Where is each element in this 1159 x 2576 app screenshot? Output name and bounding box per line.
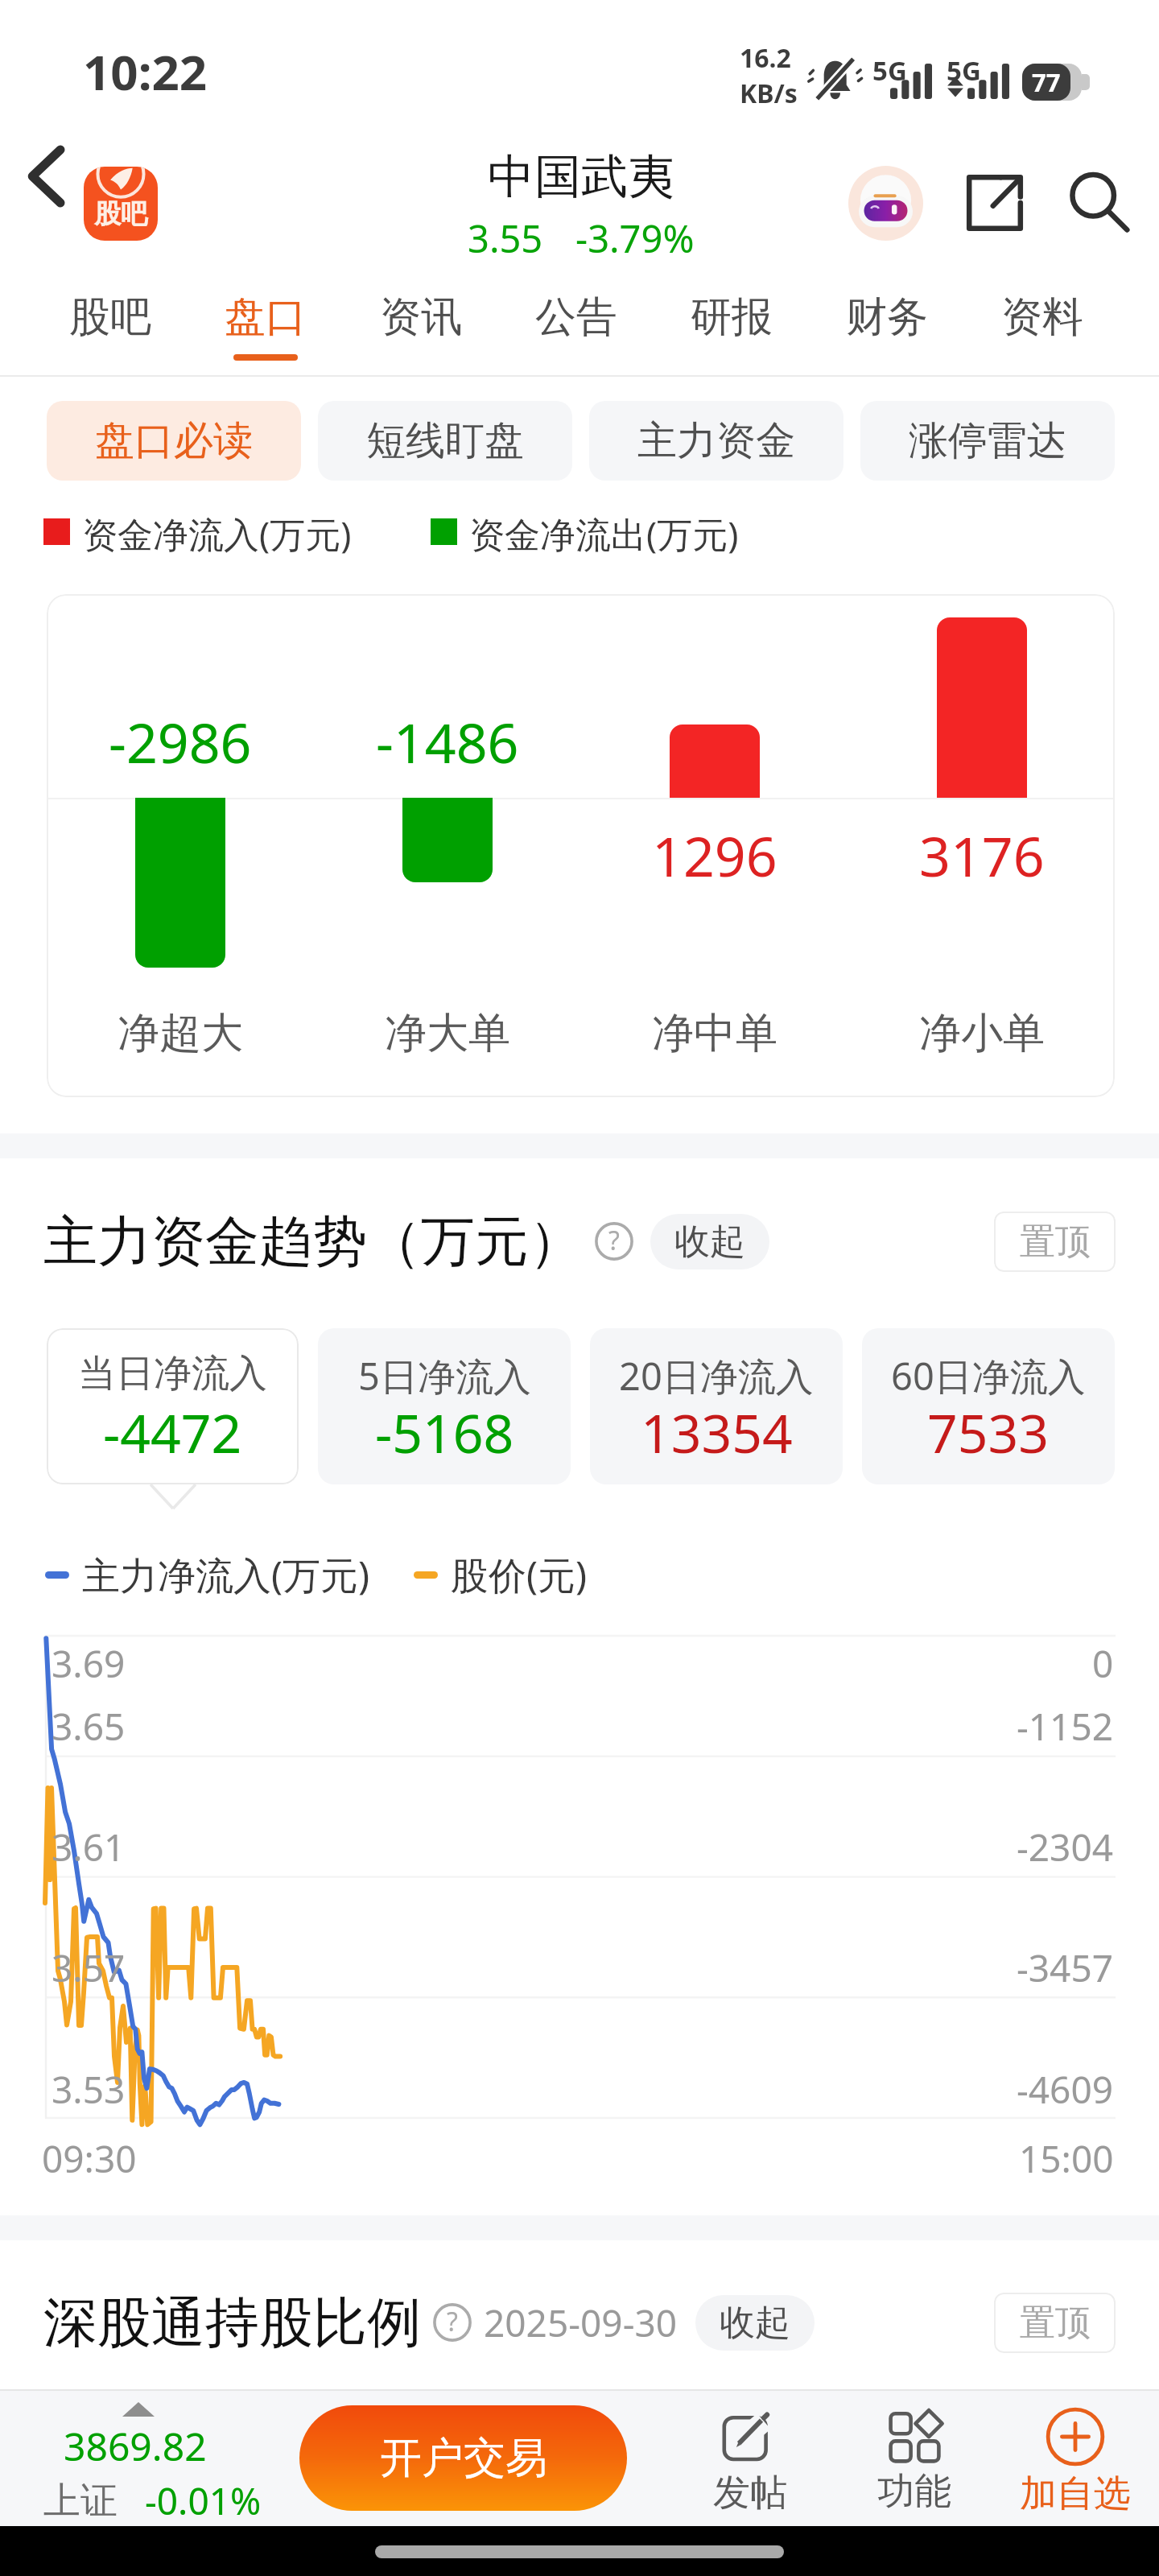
staticText: 3.57	[52, 1942, 126, 1993]
button[interactable]: 功能	[840, 2389, 988, 2526]
staticText: 中国武夷	[488, 147, 674, 206]
button[interactable]: 加自选	[1001, 2389, 1149, 2526]
staticText: -1486	[376, 704, 519, 779]
staticText: 3176	[919, 818, 1045, 893]
staticText: 3869.82	[64, 2420, 207, 2472]
staticText: 资金净流出(万元)	[469, 510, 739, 558]
staticText: 盘口必读	[95, 416, 253, 466]
staticText: KB/s	[740, 76, 798, 111]
button[interactable]: 研报	[654, 270, 809, 377]
staticText: 3.53	[52, 2064, 126, 2115]
button[interactable]: 置顶	[994, 1212, 1116, 1272]
staticText: 净中单	[652, 1007, 777, 1060]
staticText: 收起	[720, 2301, 790, 2345]
staticText: 资料	[1001, 291, 1083, 343]
staticText: 资金净流入(万元)	[82, 510, 352, 558]
button[interactable]: 置顶	[994, 2293, 1116, 2353]
staticText: 2025-09-30	[484, 2297, 678, 2348]
staticText: 13354	[641, 1396, 793, 1468]
button[interactable]: 收起	[650, 1214, 769, 1269]
staticText: 60日净流入	[891, 1350, 1086, 1402]
staticText: -2986	[109, 704, 252, 779]
staticText: -0.01%	[145, 2475, 262, 2526]
button[interactable]: 股吧	[84, 167, 158, 241]
staticText: 当日净流入	[78, 1350, 267, 1397]
staticText: 涨停雷达	[909, 416, 1066, 466]
staticText: -4609	[1017, 2064, 1114, 2115]
staticText: 0	[1092, 1638, 1114, 1689]
staticText: 盘口	[225, 291, 307, 343]
staticText: 深股通持股比例	[43, 2289, 421, 2356]
button[interactable]: 盘口	[188, 270, 343, 377]
staticText: 收起	[674, 1220, 745, 1264]
staticText: 10:22	[83, 39, 208, 105]
staticText: -3457	[1017, 1942, 1114, 1993]
button[interactable]: 60日净流入	[862, 1328, 1115, 1484]
staticText: 发帖	[713, 2470, 787, 2516]
staticText: 主力资金趋势（万元）	[43, 1207, 583, 1275]
staticText: 7533	[927, 1396, 1050, 1468]
button[interactable]: 短线盯盘	[318, 401, 572, 481]
button[interactable]: 开户交易	[299, 2405, 627, 2511]
staticText: 09:30	[42, 2133, 137, 2184]
staticText: 财务	[846, 291, 928, 343]
button[interactable]: 主力资金	[589, 401, 843, 481]
button[interactable]: 公告	[499, 270, 654, 377]
button[interactable]: 返回	[7, 138, 85, 215]
button[interactable]: 20日净流入	[590, 1328, 843, 1484]
staticText: 3.55	[468, 213, 543, 264]
staticText: 77	[1032, 65, 1061, 99]
staticText: 16.2	[740, 40, 791, 76]
staticText: 资讯	[380, 291, 462, 343]
staticText: 1296	[652, 818, 777, 893]
staticText: 15:00	[1019, 2133, 1114, 2184]
staticText: 5日净流入	[358, 1350, 531, 1402]
staticText: 净大单	[385, 1007, 510, 1060]
button[interactable]: 资料	[965, 270, 1120, 377]
staticText: ?	[608, 1223, 620, 1258]
staticText: 加自选	[1020, 2471, 1131, 2517]
button[interactable]: 搜索	[1062, 166, 1136, 240]
button[interactable]: 当日净流入	[47, 1328, 299, 1484]
staticText: -4472	[103, 1396, 242, 1468]
staticText: -1152	[1017, 1701, 1114, 1752]
staticText: 净小单	[919, 1007, 1045, 1060]
staticText: 主力资金	[637, 416, 795, 466]
staticText: 公告	[535, 291, 617, 343]
staticText: 股吧	[94, 197, 147, 231]
staticText: 5G	[872, 52, 907, 89]
staticText: 置顶	[1020, 2301, 1091, 2345]
button[interactable]: AI 助手	[840, 158, 930, 248]
staticText: 3.65	[52, 1701, 126, 1752]
button[interactable]: 分享	[958, 166, 1032, 240]
button[interactable]: 发帖	[676, 2389, 824, 2526]
button[interactable]: 5日净流入	[318, 1328, 571, 1484]
staticText: ?	[447, 2304, 458, 2339]
button[interactable]: 涨停雷达	[860, 401, 1115, 481]
button[interactable]: 股吧	[33, 270, 188, 377]
staticText: 置顶	[1020, 1220, 1091, 1264]
staticText: 3.61	[52, 1822, 126, 1872]
staticText: 短线盯盘	[366, 416, 524, 466]
staticText: 5G	[947, 52, 981, 89]
staticText: 研报	[691, 291, 773, 343]
staticText: 股吧	[69, 291, 151, 343]
staticText: 主力净流入(万元)	[82, 1549, 370, 1600]
button[interactable]: 资讯	[344, 270, 498, 377]
staticText: -2304	[1017, 1822, 1114, 1872]
staticText: -3.79%	[575, 213, 695, 264]
staticText: 功能	[877, 2468, 951, 2515]
staticText: 20日净流入	[619, 1350, 814, 1402]
staticText: 开户交易	[380, 2432, 547, 2485]
staticText: 股价(元)	[451, 1549, 588, 1600]
staticText: 上证	[43, 2478, 118, 2524]
staticText: -5168	[375, 1396, 514, 1468]
button[interactable]: 收起	[695, 2295, 815, 2351]
button[interactable]: 财务	[810, 270, 964, 377]
button[interactable]: 盘口必读	[47, 401, 301, 481]
staticText: 3.69	[52, 1638, 126, 1689]
staticText: 净超大	[118, 1007, 243, 1060]
